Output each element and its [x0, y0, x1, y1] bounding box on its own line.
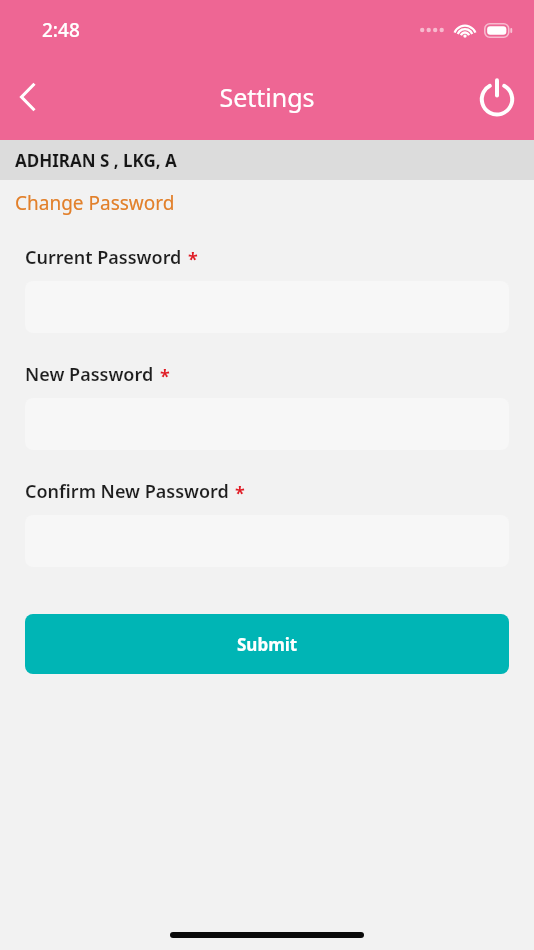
- staticText: *: [160, 364, 170, 389]
- staticText: *: [188, 247, 198, 272]
- staticText: Submit: [237, 633, 298, 656]
- staticText: Current Password: [25, 245, 182, 270]
- staticText: ADHIRAN S , LKG, A: [15, 149, 177, 172]
- staticText: New Password: [25, 362, 154, 387]
- staticText: Confirm New Password: [25, 479, 229, 504]
- button[interactable]: Back: [0, 69, 56, 125]
- button[interactable]: Submit: [25, 614, 509, 674]
- button[interactable]: Log out: [468, 68, 526, 126]
- staticText: Settings: [219, 80, 315, 114]
- staticText: 2:48: [42, 17, 80, 43]
- staticText: Change Password: [15, 190, 175, 216]
- staticText: *: [235, 481, 245, 506]
